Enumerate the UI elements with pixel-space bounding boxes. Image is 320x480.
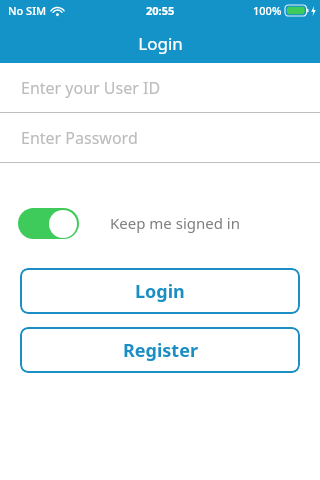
staticText: Enter Password <box>21 127 138 149</box>
staticText: Login <box>138 32 183 55</box>
staticText: No SIM <box>8 3 47 18</box>
button[interactable]: Enter Password <box>0 113 320 162</box>
button[interactable]: Login <box>20 268 300 314</box>
button[interactable]: Keep me signed in toggle <box>18 208 79 239</box>
button[interactable]: Register <box>20 327 300 373</box>
staticText: Register <box>123 338 198 363</box>
staticText: 100% <box>253 3 282 18</box>
staticText: Login <box>135 279 185 304</box>
staticText: Keep me signed in <box>110 213 240 233</box>
staticText: Enter your User ID <box>21 77 161 99</box>
staticText: 20:55 <box>146 3 175 18</box>
button[interactable]: Enter your User ID <box>0 63 320 112</box>
